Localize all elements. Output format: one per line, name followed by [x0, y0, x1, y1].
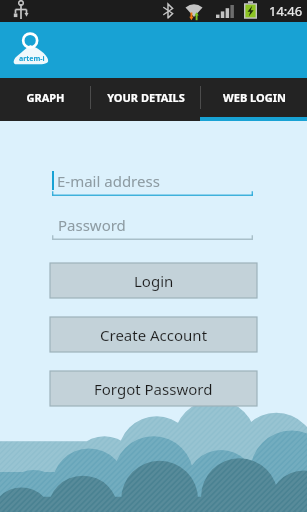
staticText: artem-i	[19, 54, 45, 64]
staticText: Login	[134, 271, 174, 291]
button[interactable]: WEB LOGIN	[201, 78, 307, 117]
button[interactable]: Login	[50, 263, 257, 298]
button[interactable]: Create Account	[50, 317, 257, 352]
staticText: Forgot Password	[94, 379, 213, 399]
button[interactable]: Password	[52, 210, 253, 240]
staticText: YOUR DETAILS	[107, 90, 185, 105]
staticText: Create Account	[100, 325, 208, 345]
button[interactable]: GRAPH	[0, 78, 90, 117]
button[interactable]: E-mail address	[52, 166, 253, 196]
staticText: E-mail address	[57, 171, 160, 191]
button[interactable]: artem-i home	[9, 27, 54, 72]
staticText: WEB LOGIN	[223, 90, 286, 105]
staticText: GRAPH	[26, 90, 65, 105]
staticText: Password	[58, 215, 126, 235]
staticText: 14:46	[269, 2, 303, 20]
button[interactable]: Forgot Password	[50, 371, 257, 406]
button[interactable]: YOUR DETAILS	[91, 78, 200, 117]
